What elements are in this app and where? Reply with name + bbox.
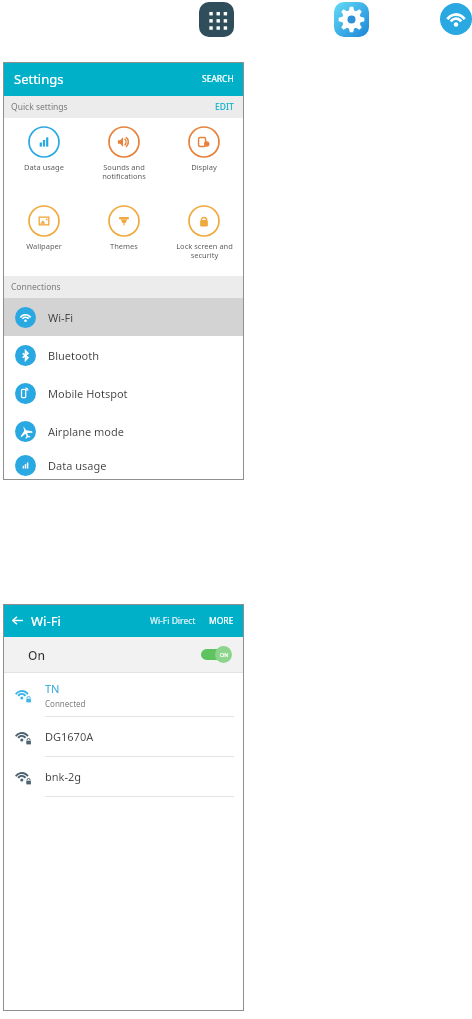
staticText: Connected: [45, 698, 86, 709]
button[interactable]: Data usage: [3, 118, 84, 197]
button[interactable]: On: [3, 637, 244, 672]
staticText: Wi-Fi: [48, 310, 74, 325]
staticText: Themes: [110, 241, 138, 251]
button[interactable]: bnk-2g: [3, 757, 244, 797]
staticText: Lock screen and security: [176, 241, 233, 261]
staticText: Data usage: [24, 162, 64, 172]
button[interactable]: Themes: [84, 197, 164, 276]
staticText: DG1670A: [45, 729, 94, 744]
button[interactable]: Connections: [3, 276, 244, 298]
staticText: Display: [191, 162, 217, 172]
button[interactable]: Display: [164, 118, 244, 197]
staticText: Wallpaper: [26, 241, 62, 251]
button[interactable]: Settings: [3, 62, 244, 96]
staticText: Connections: [11, 281, 61, 293]
button[interactable]: Data usage: [3, 450, 244, 480]
button[interactable]: Wi-Fi: [440, 3, 472, 35]
button[interactable]: Sounds and notifications: [84, 118, 164, 197]
button[interactable]: TN: [3, 673, 244, 717]
staticText: TN: [45, 681, 60, 696]
staticText: On: [28, 647, 45, 663]
button[interactable]: MORE: [209, 615, 234, 627]
button[interactable]: Wallpaper: [3, 197, 84, 276]
button[interactable]: Mobile Hotspot: [3, 374, 244, 412]
button[interactable]: Apps: [199, 2, 234, 37]
staticText: Mobile Hotspot: [48, 386, 128, 401]
button[interactable]: Wi-Fi Direct: [150, 615, 196, 627]
staticText: EDIT: [215, 101, 234, 113]
button[interactable]: Settings: [334, 2, 369, 37]
staticText: SEARCH: [202, 73, 234, 85]
button[interactable]: Lock screen and security: [164, 197, 244, 276]
button[interactable]: DG1670A: [3, 717, 244, 757]
button[interactable]: Quick settings: [3, 96, 244, 118]
staticText: Bluetooth: [48, 348, 100, 363]
staticText: bnk-2g: [45, 769, 82, 784]
button[interactable]: Bluetooth: [3, 336, 244, 374]
staticText: Sounds and notifications: [102, 162, 146, 182]
button[interactable]: Wi-Fi: [3, 298, 244, 336]
staticText: Airplane mode: [48, 424, 124, 439]
staticText: Wi-Fi: [31, 612, 61, 630]
button[interactable]: Airplane mode: [3, 412, 244, 450]
staticText: Quick settings: [11, 101, 68, 113]
button[interactable]: Back: [3, 604, 31, 637]
staticText: Data usage: [48, 458, 107, 473]
staticText: ON: [220, 651, 229, 658]
staticText: Settings: [14, 70, 64, 88]
